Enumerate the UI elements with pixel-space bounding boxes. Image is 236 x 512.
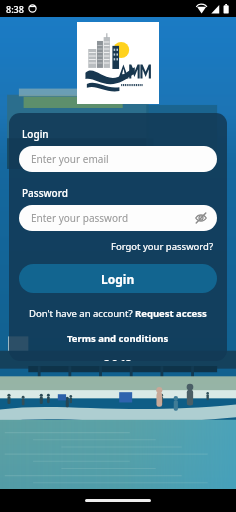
staticText: Login <box>101 271 135 287</box>
staticText: Don't have an account? <box>29 307 135 320</box>
button[interactable]: Enter your password <box>19 205 217 231</box>
staticText: Forgot your password? <box>111 240 214 253</box>
staticText: 2.0.12 <box>104 356 132 361</box>
button[interactable]: Don't have an account? <box>19 305 217 322</box>
staticText: Enter your email <box>31 152 109 166</box>
button[interactable]: Terms and conditions <box>19 330 217 347</box>
button[interactable]: Login <box>19 264 217 293</box>
other: Show password <box>195 212 207 224</box>
staticText: Login <box>22 127 49 141</box>
button[interactable]: Enter your email <box>19 146 217 172</box>
staticText: Password <box>22 186 68 200</box>
button[interactable]: Forgot your password? <box>108 238 217 255</box>
staticText: Terms and conditions <box>67 332 169 345</box>
staticText: Enter your password <box>31 211 129 225</box>
staticText: 8:38 <box>6 3 24 15</box>
staticText: Request access <box>135 307 207 320</box>
